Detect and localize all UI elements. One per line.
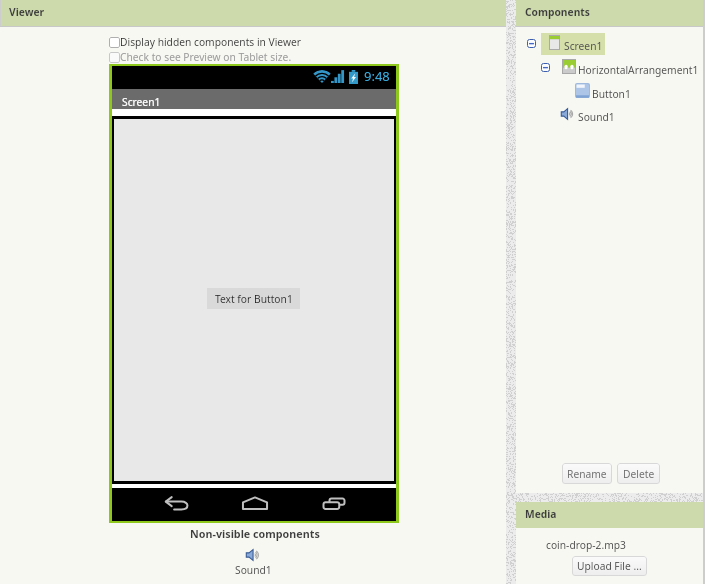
staticText: HorizontalArrangement1 — [578, 63, 699, 77]
button[interactable]: Back — [165, 496, 189, 510]
button[interactable]: Collapse — [541, 63, 550, 72]
staticText: coin-drop-2.mp3 — [546, 538, 626, 552]
button[interactable]: Recent apps — [322, 497, 347, 510]
staticText: Text for Button1 — [215, 292, 293, 306]
staticText: 9:48 — [364, 67, 390, 85]
button[interactable]: Sound1 — [560, 106, 640, 126]
button[interactable]: HorizontalArrangement1 — [541, 58, 701, 78]
button[interactable]: Rename — [562, 463, 612, 484]
button[interactable]: Home — [241, 496, 269, 510]
staticText: Rename — [567, 467, 607, 481]
staticText: Delete — [623, 467, 655, 481]
button[interactable]: Button1 — [574, 82, 654, 102]
staticText: Components — [525, 5, 590, 19]
button[interactable]: Delete — [617, 463, 660, 484]
button[interactable]: Display hidden components in Viewer — [109, 36, 291, 49]
button[interactable]: Text for Button1 — [207, 288, 300, 309]
button[interactable]: Check to see Preview on Tablet size. — [109, 51, 291, 64]
staticText: Check to see Preview on Tablet size. — [120, 50, 292, 64]
staticText: Viewer — [9, 5, 45, 19]
button[interactable]: Upload File ... — [572, 556, 647, 576]
staticText: Media — [525, 507, 557, 521]
staticText: Upload File ... — [577, 559, 642, 573]
staticText: Sound1 — [578, 110, 615, 124]
staticText: Button1 — [592, 87, 631, 101]
staticText: Sound1 — [235, 563, 272, 577]
button[interactable]: Screen1 — [527, 33, 607, 55]
staticText: Screen1 — [122, 95, 161, 109]
staticText: Screen1 — [564, 39, 603, 53]
staticText: Display hidden components in Viewer — [120, 35, 302, 49]
button[interactable]: Collapse — [527, 39, 536, 48]
staticText: Non-visible components — [190, 527, 320, 542]
